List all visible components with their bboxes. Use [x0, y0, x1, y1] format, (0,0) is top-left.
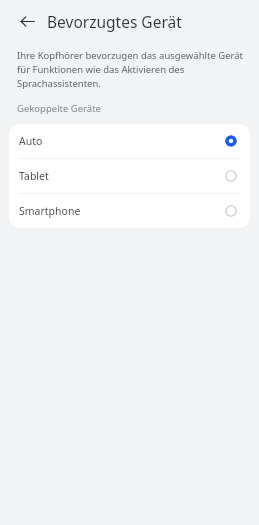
button[interactable]: Zurück	[13, 7, 41, 35]
button[interactable]: Auto	[9, 124, 250, 158]
button[interactable]: Smartphone	[9, 194, 250, 228]
staticText: Ihre Kopfhörer bevorzugen das ausgewählt…	[17, 48, 245, 90]
button[interactable]: Tablet	[9, 159, 250, 193]
staticText: Smartphone	[19, 204, 81, 218]
staticText: Gekoppelte Geräte	[17, 102, 101, 115]
staticText: Tablet	[19, 169, 49, 183]
staticText: Auto	[19, 134, 43, 148]
staticText: Bevorzugtes Gerät	[47, 11, 182, 32]
